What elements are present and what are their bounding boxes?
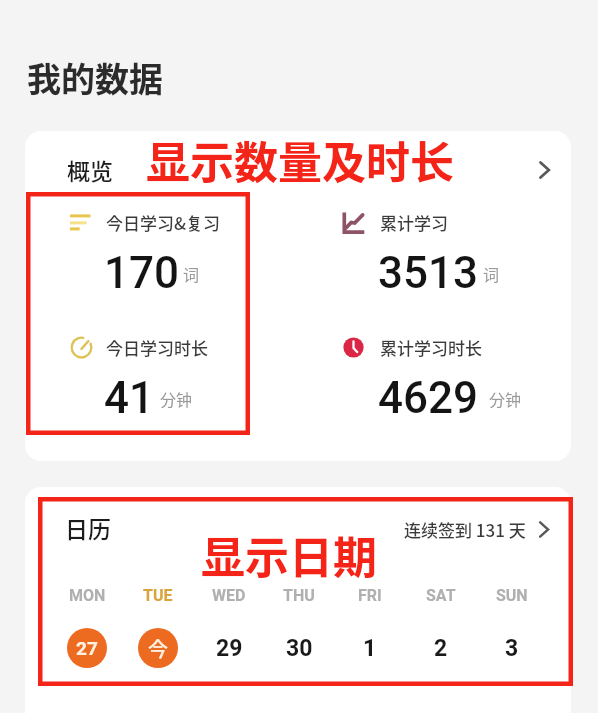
staticText: 我的数据 xyxy=(27,53,163,102)
staticText: 分钟 xyxy=(160,387,193,410)
staticText: 3513 xyxy=(378,247,479,299)
staticText: 概览 xyxy=(67,153,113,186)
staticText: 累计学习时长 xyxy=(380,335,482,360)
staticText: 词 xyxy=(183,262,200,285)
button[interactable]: 27 xyxy=(62,623,112,673)
button[interactable]: 连续签到 131 天 xyxy=(404,517,554,542)
button[interactable]: 29 xyxy=(204,623,254,673)
staticText: 显示日期 xyxy=(201,523,377,587)
staticText: 41 xyxy=(104,372,155,424)
staticText: 2 xyxy=(434,635,448,662)
button[interactable]: 今 xyxy=(133,623,183,673)
staticText: 累计学习 xyxy=(380,210,448,235)
button[interactable]: More overview xyxy=(524,150,564,190)
staticText: TUE xyxy=(143,586,173,605)
staticText: FRI xyxy=(358,586,382,605)
button[interactable]: 3 xyxy=(487,623,537,673)
staticText: 今日学习&复习 xyxy=(106,210,221,235)
button[interactable]: 概览 xyxy=(25,131,571,461)
staticText: MON xyxy=(69,586,106,605)
staticText: WED xyxy=(212,586,246,605)
staticText: 显示数量及时长 xyxy=(146,128,454,192)
staticText: 4629 xyxy=(378,372,479,424)
staticText: 30 xyxy=(286,635,313,662)
staticText: 1 xyxy=(363,635,377,662)
button[interactable]: 1 xyxy=(345,623,395,673)
staticText: 连续签到 131 天 xyxy=(404,517,526,542)
staticText: 今日学习时长 xyxy=(106,335,208,360)
staticText: 今 xyxy=(148,634,168,663)
staticText: 日历 xyxy=(65,511,111,544)
button[interactable]: 30 xyxy=(274,623,324,673)
staticText: SUN xyxy=(496,586,528,605)
staticText: 170 xyxy=(104,247,180,299)
staticText: SAT xyxy=(426,586,456,605)
staticText: 27 xyxy=(76,637,98,659)
staticText: 词 xyxy=(483,262,500,285)
staticText: THU xyxy=(283,586,315,605)
staticText: 29 xyxy=(216,635,243,662)
button[interactable]: 2 xyxy=(416,623,466,673)
staticText: 3 xyxy=(505,635,519,662)
staticText: 分钟 xyxy=(489,387,522,410)
